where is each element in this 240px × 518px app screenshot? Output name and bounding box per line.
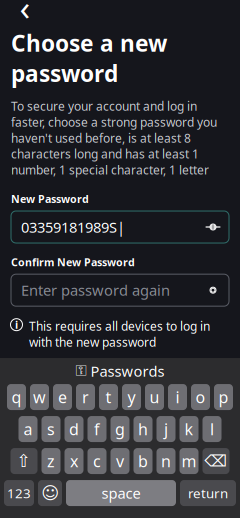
staticText: d (69, 418, 79, 440)
staticText: ‹ (19, 0, 30, 30)
staticText: ⚿ (75, 364, 86, 378)
button[interactable]: return (180, 480, 236, 506)
button[interactable]: k (179, 416, 198, 442)
staticText: ☺ (41, 483, 59, 503)
button[interactable]: y (122, 384, 141, 410)
button[interactable]: n (156, 448, 175, 474)
button[interactable]: w (30, 384, 49, 410)
button[interactable]: l (202, 416, 221, 442)
button[interactable]: m (179, 448, 198, 474)
button[interactable]: r (76, 384, 95, 410)
staticText: ⌫ (204, 452, 227, 470)
staticText: space (101, 483, 140, 503)
staticText: v (116, 450, 124, 472)
button[interactable]: space (66, 480, 176, 506)
staticText: g (115, 418, 125, 440)
button[interactable]: p (214, 384, 233, 410)
button[interactable]: f (87, 416, 106, 442)
staticText: l (210, 418, 214, 440)
staticText: n (161, 450, 171, 472)
staticText: z (47, 450, 55, 472)
staticText: p (218, 386, 228, 408)
staticText: h (138, 418, 148, 440)
staticText: t (105, 386, 111, 408)
staticText: j (164, 418, 168, 440)
button[interactable]: Show password (201, 278, 225, 302)
button[interactable]: j (156, 416, 175, 442)
button[interactable]: ⇧ (10, 448, 37, 474)
staticText: k (184, 418, 193, 440)
button[interactable]: z (41, 448, 60, 474)
button[interactable]: ⚿ (0, 358, 240, 384)
staticText: c (93, 450, 101, 472)
staticText: 03359181989S| (21, 217, 125, 237)
button[interactable]: s (41, 416, 60, 442)
staticText: e (58, 386, 67, 408)
button[interactable]: v (110, 448, 129, 474)
button[interactable]: d (64, 416, 83, 442)
staticText: 123 (7, 484, 31, 502)
staticText: ⇧ (16, 451, 31, 471)
staticText: New Password (11, 192, 89, 206)
staticText: i (175, 386, 179, 408)
button[interactable]: ☺ (38, 480, 62, 506)
button[interactable]: u (145, 384, 164, 410)
staticText: s (47, 418, 55, 440)
staticText: x (70, 450, 78, 472)
staticText: i (15, 318, 18, 332)
staticText: Passwords (90, 361, 164, 381)
staticText: f (94, 418, 100, 440)
staticText: This requires all devices to log in with… (29, 318, 210, 350)
button[interactable]: Hide password (201, 215, 225, 239)
staticText: To secure your account and log in faster… (11, 98, 217, 178)
staticText: m (181, 450, 196, 472)
staticText: u (149, 386, 159, 408)
staticText: a (23, 418, 32, 440)
button[interactable]: i (168, 384, 187, 410)
staticText: b (138, 450, 148, 472)
button[interactable]: 123 (4, 480, 34, 506)
button[interactable]: Back (8, 0, 42, 20)
staticText: return (188, 484, 228, 502)
staticText: Choose a new password (11, 28, 167, 88)
button[interactable]: ⌫ (202, 448, 229, 474)
staticText: q (11, 386, 21, 408)
button[interactable]: q (7, 384, 26, 410)
staticText: y (127, 386, 135, 408)
staticText: Confirm New Password (11, 255, 135, 269)
staticText: r (82, 386, 89, 408)
staticText: w (33, 386, 46, 408)
button[interactable]: g (110, 416, 129, 442)
button[interactable]: t (99, 384, 118, 410)
button[interactable]: o (191, 384, 210, 410)
button[interactable]: c (87, 448, 106, 474)
button[interactable]: a (18, 416, 37, 442)
button[interactable]: h (133, 416, 152, 442)
staticText: Enter password again (21, 280, 170, 300)
staticText: o (195, 386, 205, 408)
button[interactable]: x (64, 448, 83, 474)
button[interactable]: b (133, 448, 152, 474)
button[interactable]: e (53, 384, 72, 410)
